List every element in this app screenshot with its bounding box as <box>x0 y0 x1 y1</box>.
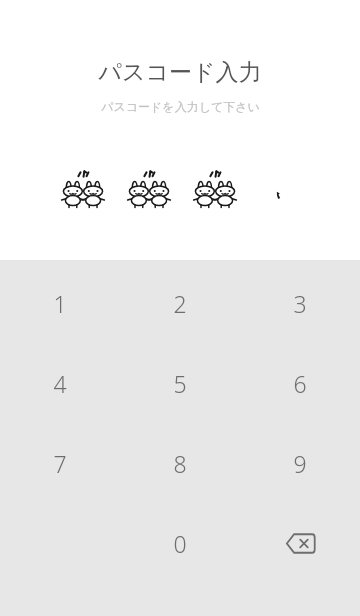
button[interactable]: 0 <box>120 503 240 583</box>
button[interactable]: 8 <box>120 423 240 503</box>
staticText: 3 <box>293 288 307 319</box>
button[interactable]: 2 <box>120 263 240 343</box>
button[interactable]: 5 <box>120 343 240 423</box>
staticText: 6 <box>293 368 307 399</box>
staticText: 2 <box>173 288 187 319</box>
staticText: 5 <box>173 368 187 399</box>
button[interactable]: 6 <box>240 343 360 423</box>
staticText: 7 <box>53 448 67 479</box>
staticText: 4 <box>53 368 67 399</box>
staticText: パスコードを入力して下さい <box>101 99 260 114</box>
button[interactable]: 4 <box>0 343 120 423</box>
button[interactable]: 7 <box>0 423 120 503</box>
button[interactable]: 9 <box>240 423 360 503</box>
staticText: 9 <box>293 448 307 479</box>
button[interactable]: 3 <box>240 263 360 343</box>
staticText: パスコード入力 <box>98 58 262 87</box>
button[interactable]: Backspace <box>240 503 360 583</box>
staticText: 8 <box>173 448 187 479</box>
staticText: 0 <box>173 528 187 559</box>
button[interactable]: 1 <box>0 263 120 343</box>
staticText: 1 <box>53 288 67 319</box>
